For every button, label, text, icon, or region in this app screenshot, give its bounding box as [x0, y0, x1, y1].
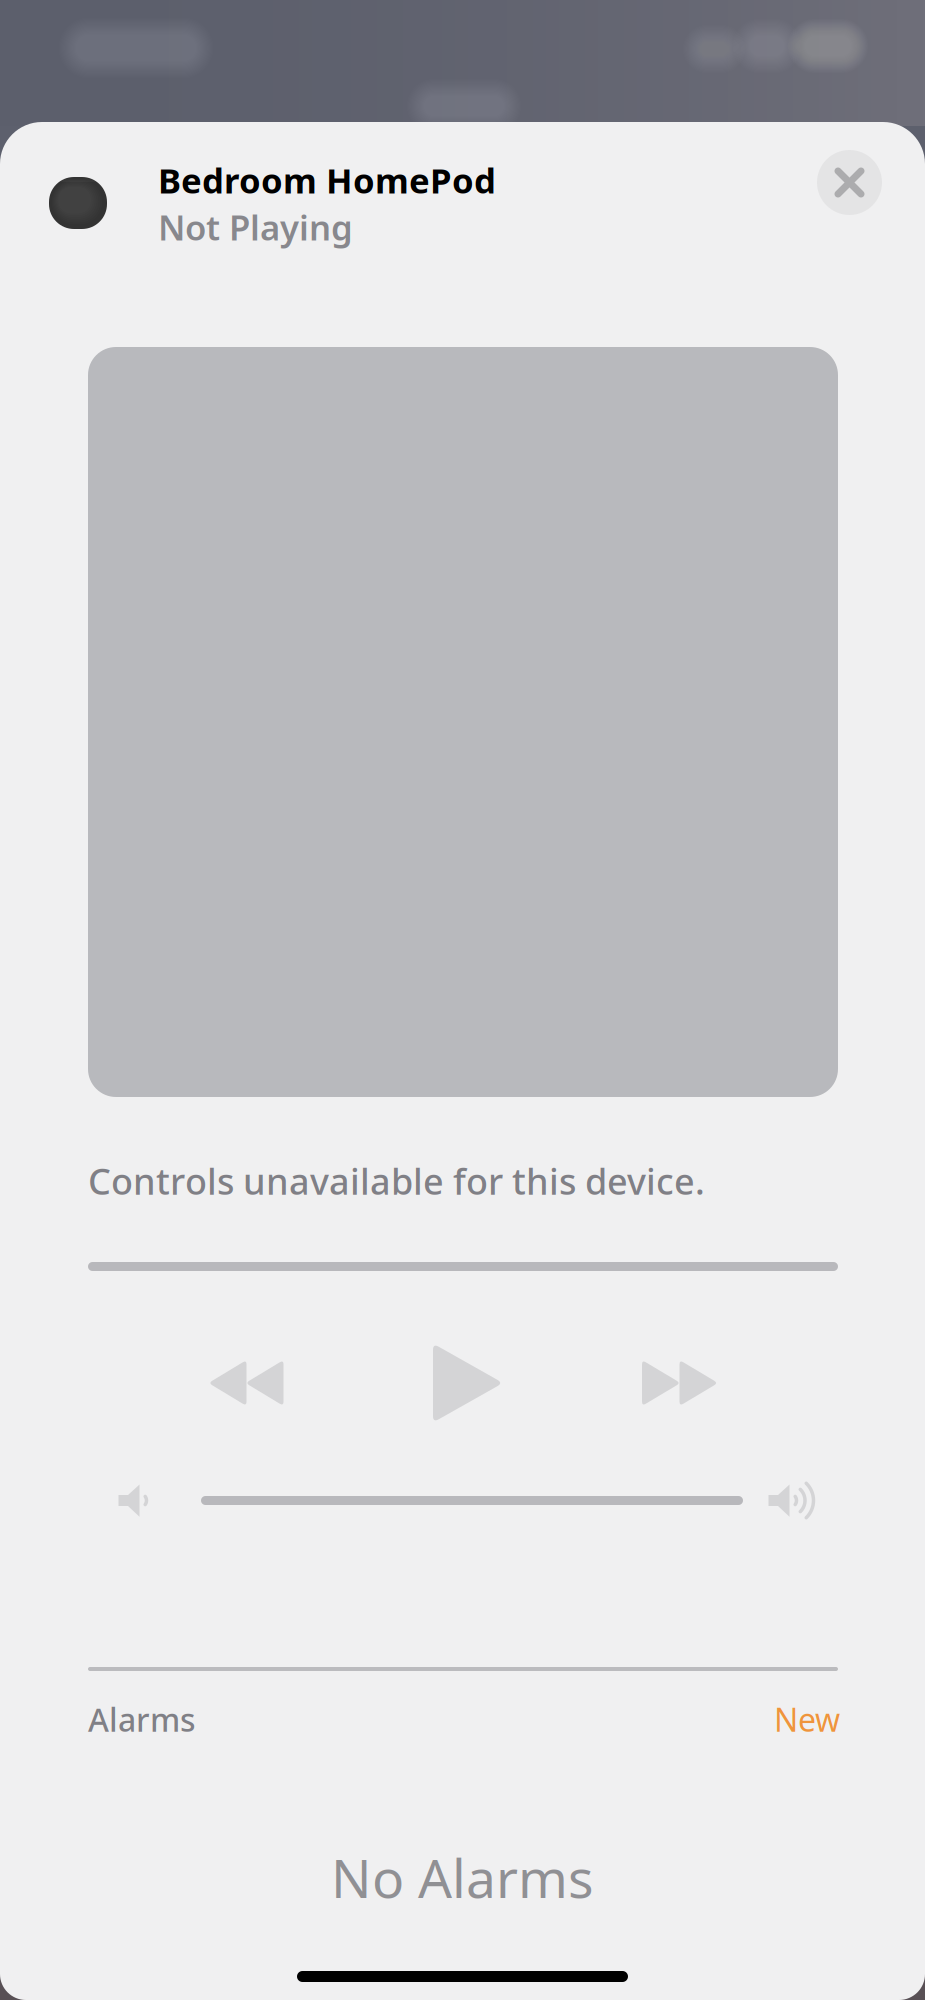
- button[interactable]: Close: [817, 150, 882, 215]
- staticText: Bedroom HomePod: [158, 157, 496, 203]
- button[interactable]: New: [770, 1698, 844, 1740]
- staticText: No Alarms: [331, 1842, 594, 1913]
- button[interactable]: Play: [408, 1333, 528, 1433]
- button[interactable]: Rewind: [186, 1333, 306, 1433]
- staticText: Alarms: [88, 1698, 196, 1740]
- button[interactable]: Fast forward: [620, 1333, 740, 1433]
- staticText: Controls unavailable for this device.: [88, 1157, 705, 1205]
- staticText: Not Playing: [158, 204, 353, 250]
- staticText: New: [774, 1698, 840, 1740]
